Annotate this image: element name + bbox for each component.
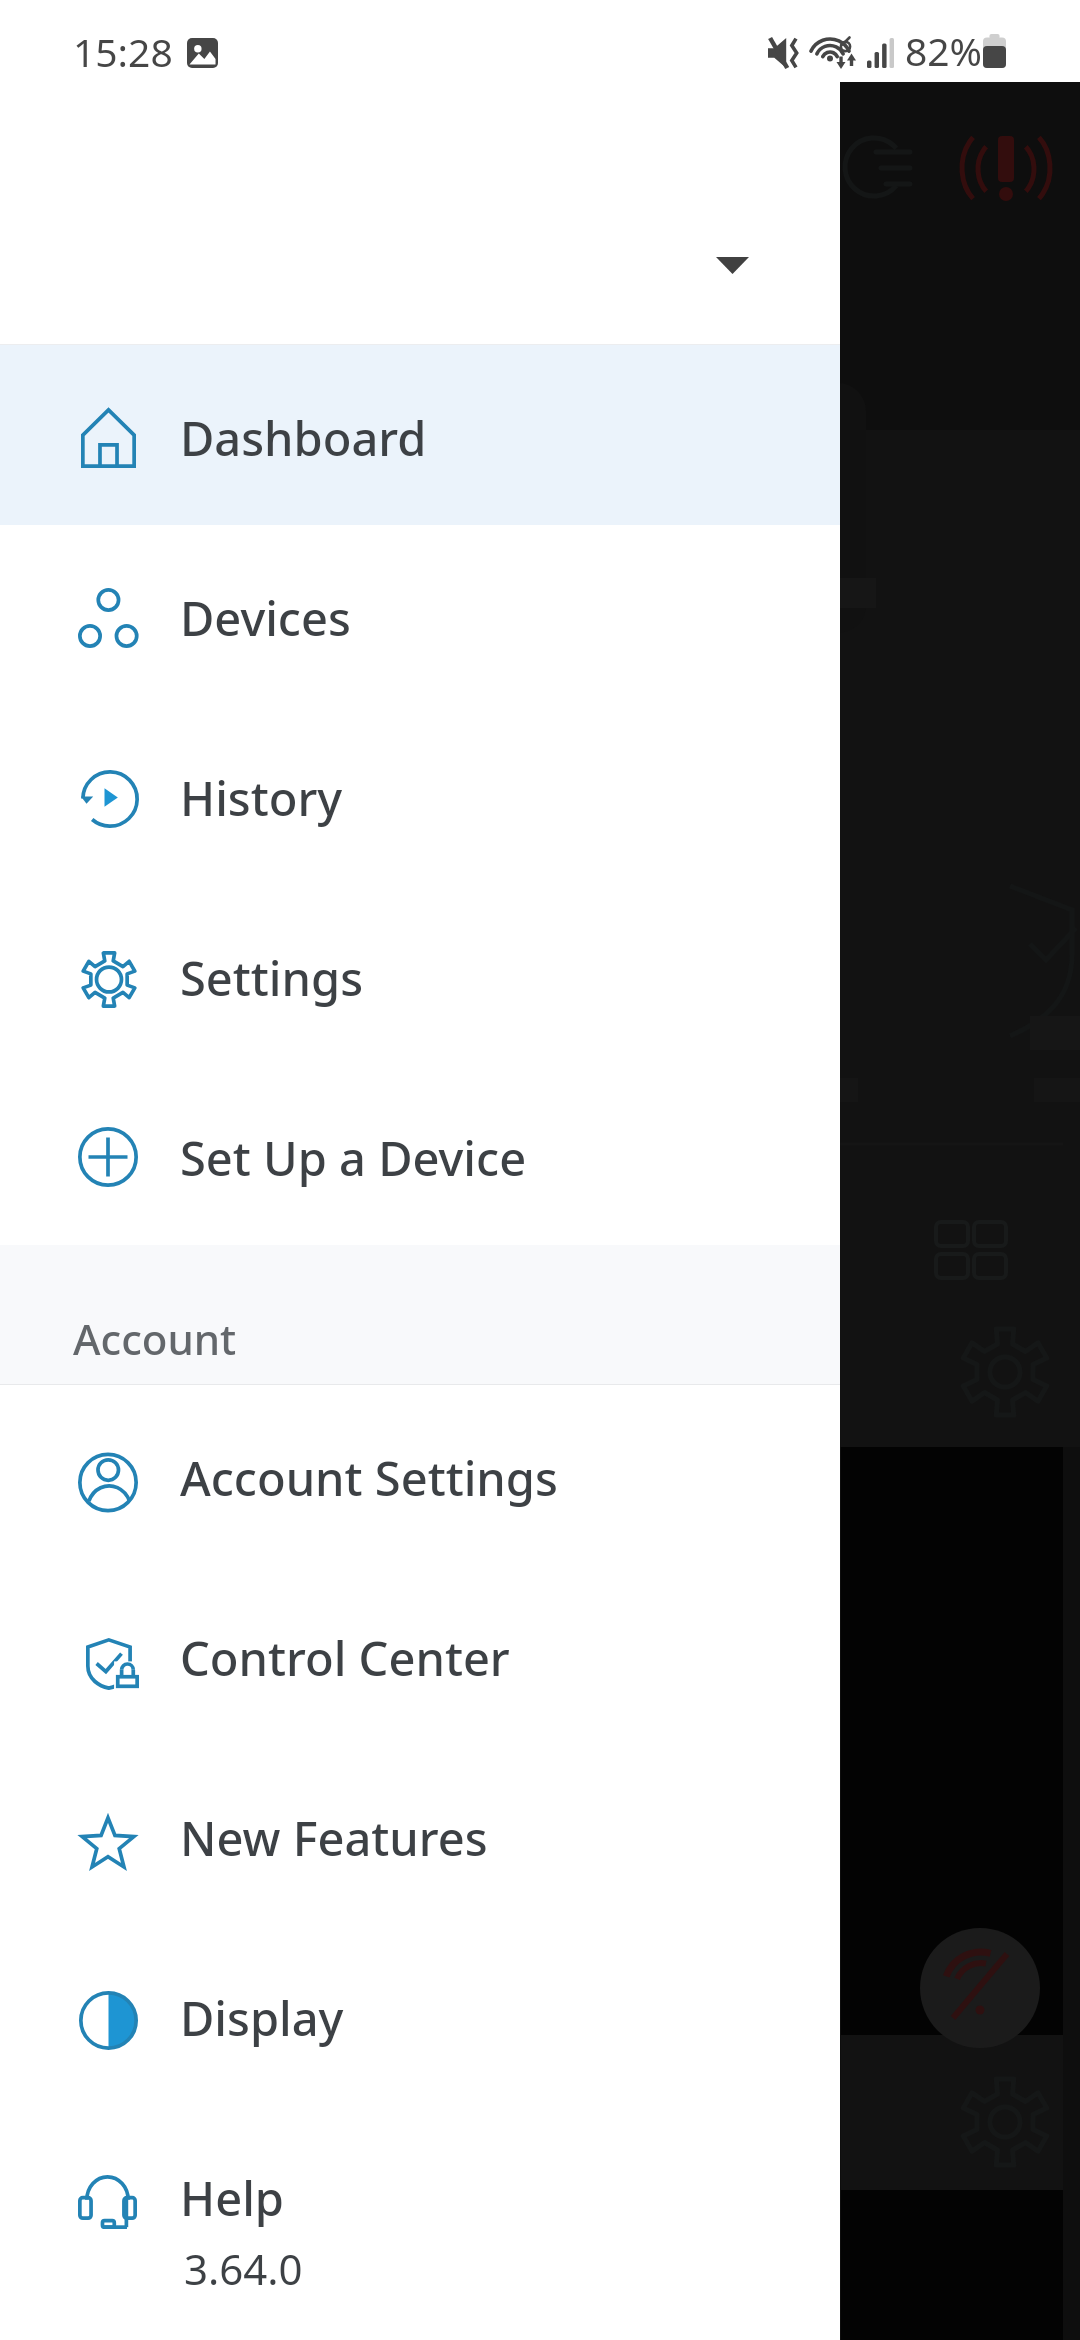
staticText: Settings (180, 946, 363, 1010)
staticText: Set Up a Device (180, 1126, 527, 1190)
staticText: Devices (180, 586, 351, 650)
staticText: Control Center (180, 1626, 510, 1690)
button[interactable]: Display (0, 1925, 840, 2105)
button[interactable]: Expand account (672, 212, 792, 312)
staticText: Help (180, 2166, 284, 2230)
button[interactable]: Help (0, 2105, 840, 2285)
button[interactable]: Set Up a Device (0, 1065, 840, 1245)
button[interactable]: Control Center (0, 1565, 840, 1745)
button[interactable]: History (0, 705, 840, 885)
staticText: 3.64.0 (184, 2240, 303, 2297)
staticText: 82% (905, 24, 983, 77)
button[interactable]: Devices (0, 525, 840, 705)
staticText: Account (73, 1310, 237, 1367)
staticText: Display (180, 1986, 344, 2050)
staticText: Dashboard (180, 406, 427, 470)
button[interactable]: Settings (0, 885, 840, 1065)
button[interactable]: New Features (0, 1745, 840, 1925)
button[interactable]: Account Settings (0, 1385, 840, 1565)
staticText: 15:28 (73, 25, 173, 78)
button[interactable]: Dashboard (0, 345, 840, 525)
staticText: Account Settings (180, 1446, 558, 1510)
staticText: New Features (180, 1806, 488, 1870)
staticText: History (180, 766, 343, 830)
